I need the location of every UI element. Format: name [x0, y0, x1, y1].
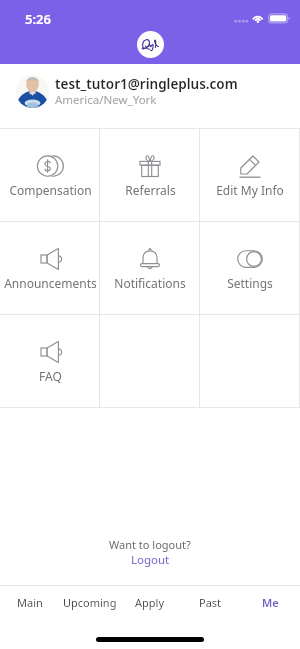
staticText: Main — [17, 595, 43, 610]
staticText: Apply — [135, 595, 165, 610]
staticText: Past — [199, 595, 222, 610]
staticText: Notifications — [114, 275, 186, 291]
staticText: Referrals — [125, 182, 176, 198]
button[interactable]: Me — [240, 586, 300, 624]
button[interactable]: Settings — [200, 222, 300, 314]
staticText: Settings — [227, 275, 273, 291]
staticText: Me — [262, 595, 279, 610]
button[interactable]: test_tutor1@ringleplus.com — [0, 64, 300, 128]
button[interactable]: FAQ — [0, 315, 100, 407]
staticText: Compensation — [9, 182, 92, 198]
button[interactable]: Referrals — [100, 129, 200, 221]
button[interactable]: Logout — [131, 552, 170, 568]
staticText: America/New_York — [55, 92, 157, 108]
staticText: Announcements — [4, 275, 97, 291]
staticText: FAQ — [39, 368, 62, 384]
staticText: 5:26 — [25, 10, 51, 28]
button[interactable]: Announcements — [0, 222, 100, 314]
button[interactable]: Edit My Info — [200, 129, 300, 221]
button[interactable]: Apply — [120, 586, 180, 624]
button[interactable]: Main — [0, 586, 60, 624]
button[interactable]: Compensation — [0, 129, 100, 221]
staticText: Logout — [131, 552, 170, 568]
button[interactable]: Notifications — [100, 222, 200, 314]
staticText: test_tutor1@ringleplus.com — [55, 75, 238, 93]
staticText: Edit My Info — [216, 182, 284, 198]
staticText: Want to logout? — [109, 537, 191, 552]
staticText: Upcoming — [63, 595, 117, 610]
button[interactable]: Past — [180, 586, 240, 624]
other: Ringle logo — [137, 31, 164, 58]
button[interactable]: Upcoming — [60, 586, 120, 624]
